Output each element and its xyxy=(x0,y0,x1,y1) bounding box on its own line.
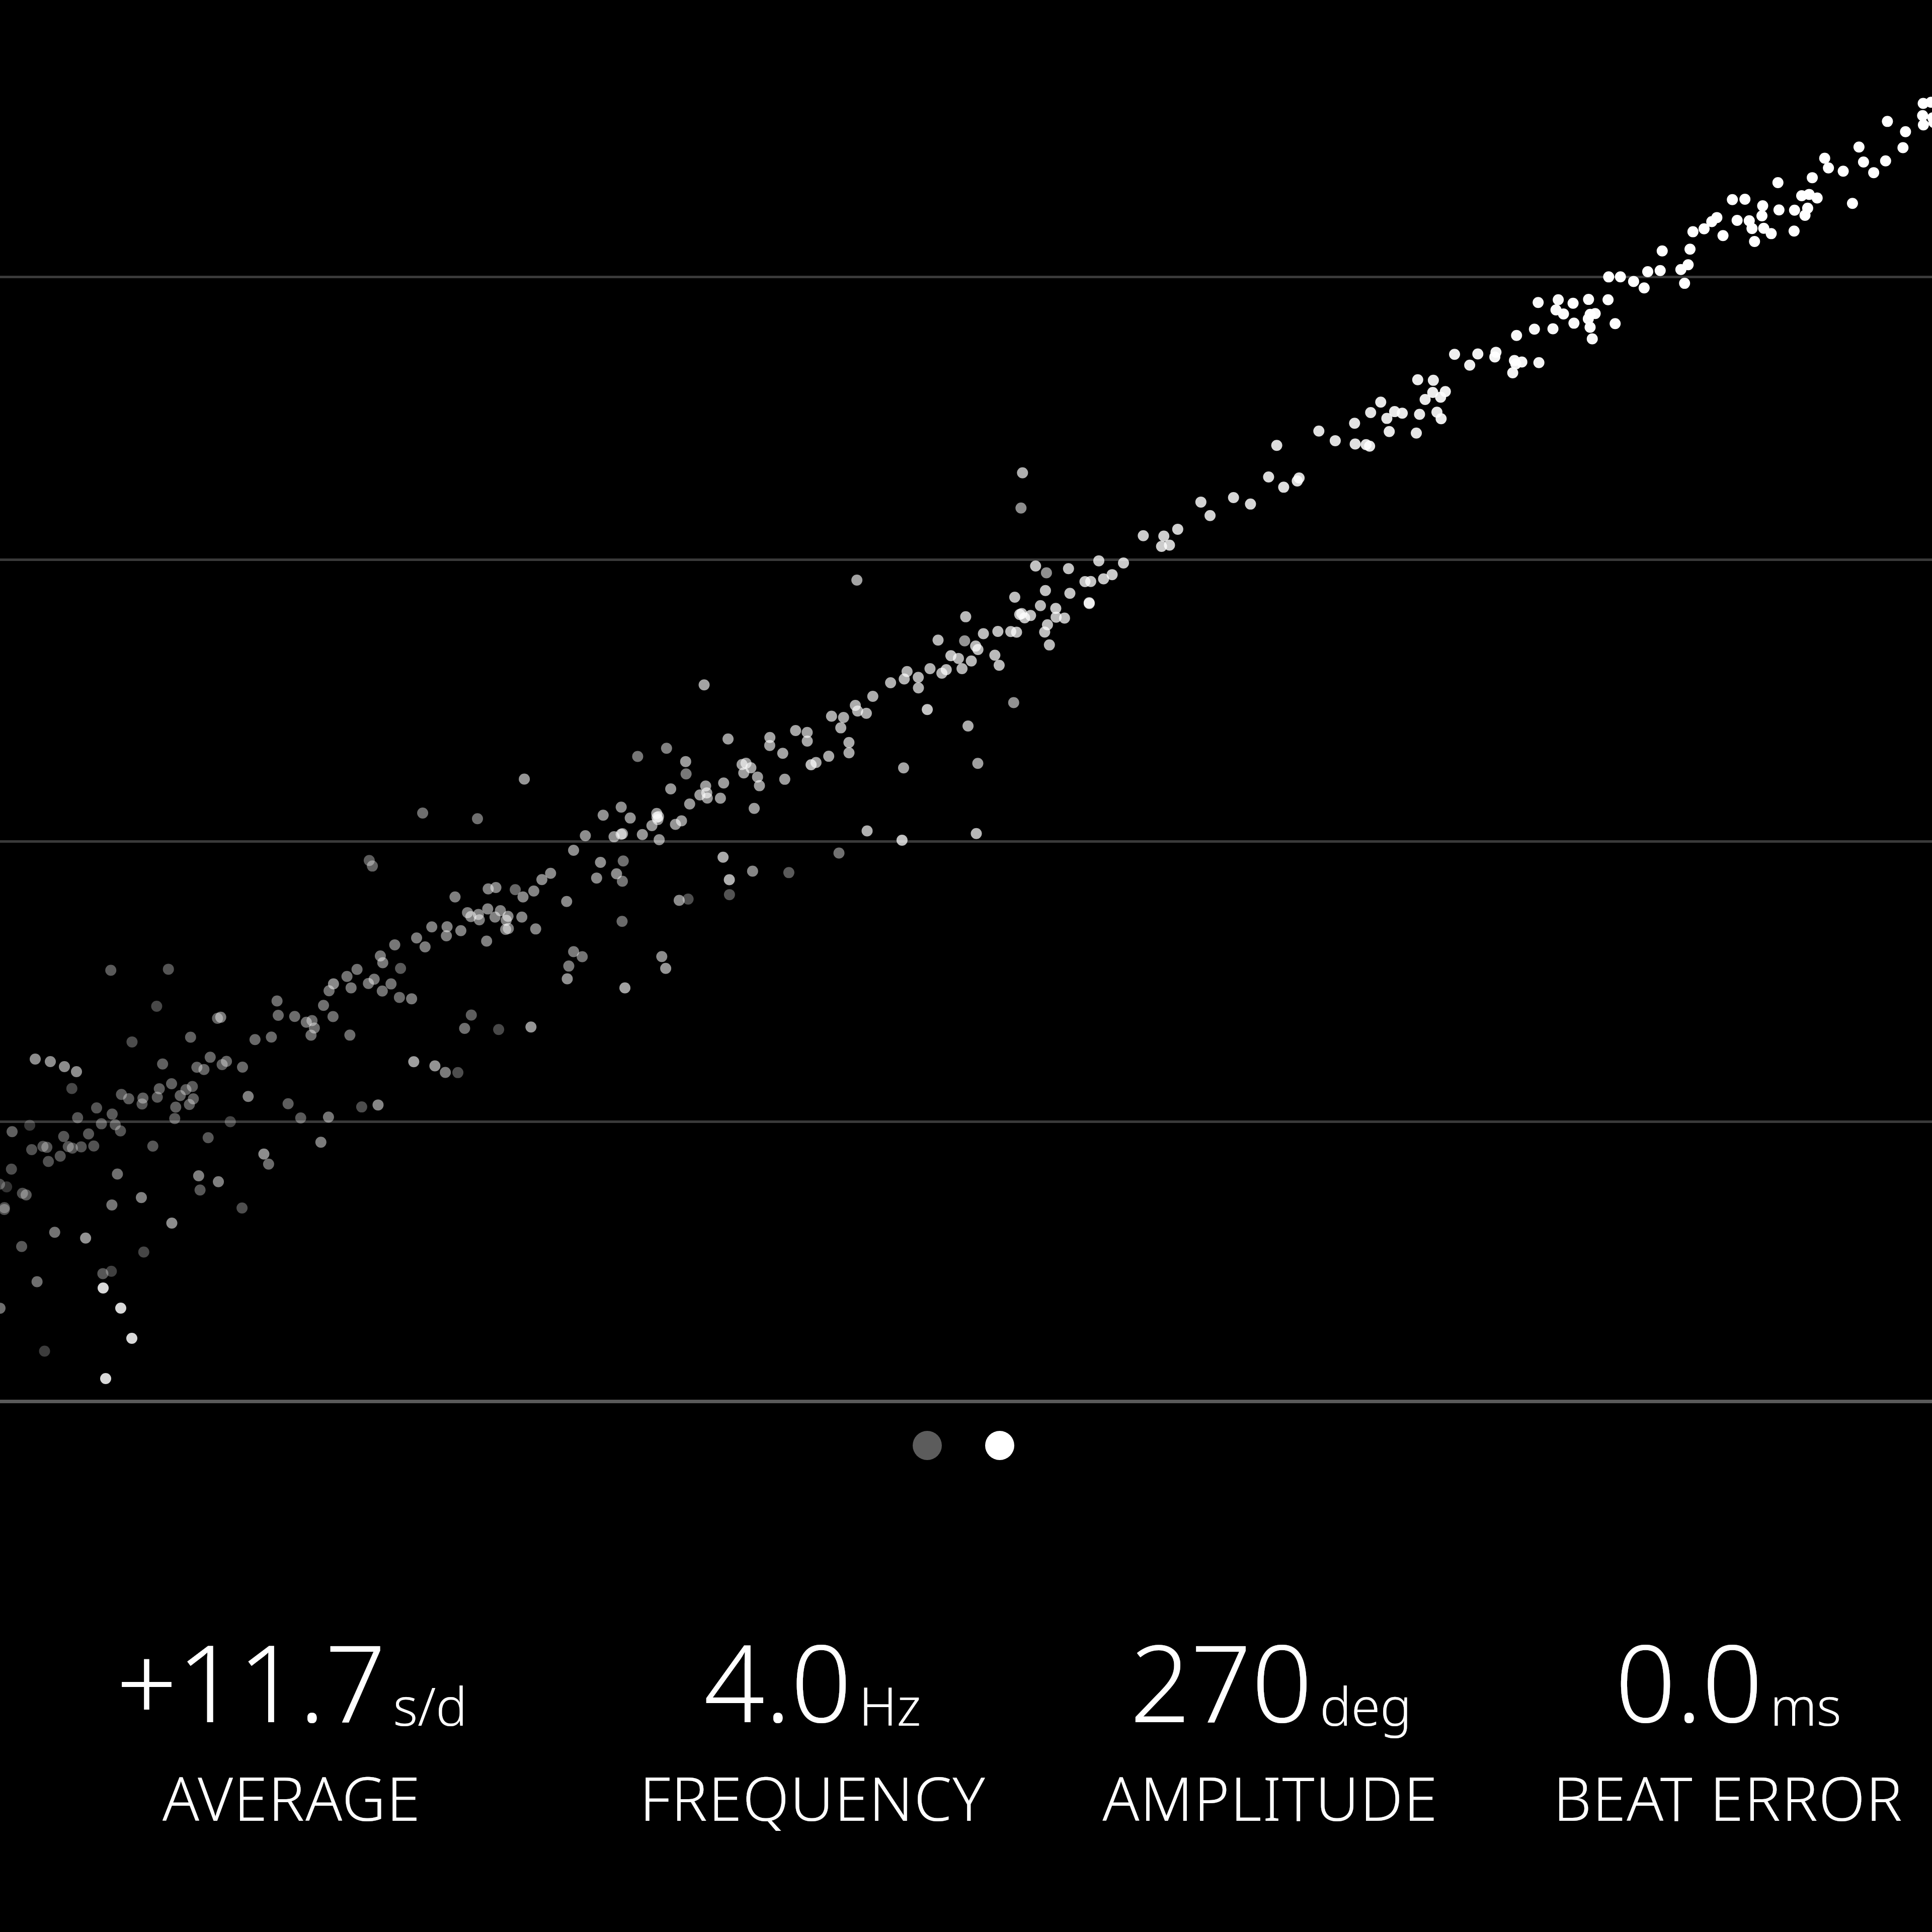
staticText: deg xyxy=(1320,1670,1412,1741)
button[interactable]: 270 xyxy=(1034,1605,1507,1841)
staticText: s/d xyxy=(393,1670,467,1741)
staticText: Hz xyxy=(859,1670,921,1741)
button[interactable]: Page 2 of 2 xyxy=(909,1428,1018,1463)
button[interactable]: 0.0 xyxy=(1492,1605,1932,1841)
staticText: 4.0 xyxy=(704,1608,852,1753)
button[interactable] xyxy=(0,0,1932,1404)
staticText: 270 xyxy=(1130,1608,1313,1753)
staticText: BEAT ERROR xyxy=(1553,1756,1903,1838)
staticText: FREQUENCY xyxy=(639,1756,986,1838)
staticText: AMPLITUDE xyxy=(1102,1756,1438,1838)
button[interactable]: +11.7 xyxy=(55,1605,528,1841)
staticText: +11.7 xyxy=(116,1608,386,1753)
staticText: 0.0 xyxy=(1615,1608,1763,1753)
button[interactable]: 4.0 xyxy=(576,1605,1049,1841)
staticText: AVERAGE xyxy=(163,1756,421,1838)
staticText: ms xyxy=(1770,1670,1841,1741)
